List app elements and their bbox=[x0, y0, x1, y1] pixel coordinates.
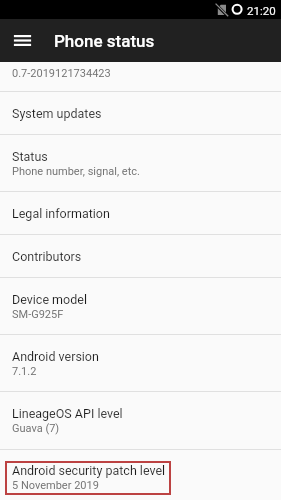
staticText: 0.7-2019121734423 bbox=[12, 67, 111, 80]
button[interactable]: Status bbox=[0, 135, 281, 191]
staticText: SM-G925F bbox=[12, 308, 64, 321]
staticText: Device model bbox=[12, 292, 87, 307]
staticText: 5 November 2019 bbox=[12, 479, 99, 492]
staticText: System updates bbox=[12, 106, 102, 121]
staticText: Contributors bbox=[12, 249, 82, 264]
button[interactable]: 0.7-2019121734423 bbox=[0, 62, 281, 91]
button[interactable]: LineageOS API level bbox=[0, 392, 281, 449]
staticText: Phone status bbox=[54, 31, 155, 51]
staticText: Status bbox=[12, 149, 48, 164]
staticText: Android security patch level bbox=[12, 463, 166, 478]
button[interactable]: Open navigation drawer bbox=[0, 19, 44, 62]
button[interactable]: Android version bbox=[0, 335, 281, 391]
button[interactable]: Device model bbox=[0, 278, 281, 334]
button[interactable]: System updates bbox=[0, 92, 281, 134]
button[interactable]: Contributors bbox=[0, 235, 281, 277]
staticText: Guava (7) bbox=[12, 422, 60, 435]
staticText: 7.1.2 bbox=[12, 365, 37, 378]
button[interactable]: Legal information bbox=[0, 192, 281, 234]
staticText: Legal information bbox=[12, 206, 110, 221]
staticText: Android version bbox=[12, 349, 99, 364]
button[interactable]: Android security patch level bbox=[0, 450, 281, 500]
staticText: 21:20 bbox=[247, 4, 276, 17]
staticText: LineageOS API level bbox=[12, 406, 123, 421]
staticText: Phone number, signal, etc. bbox=[12, 165, 140, 178]
